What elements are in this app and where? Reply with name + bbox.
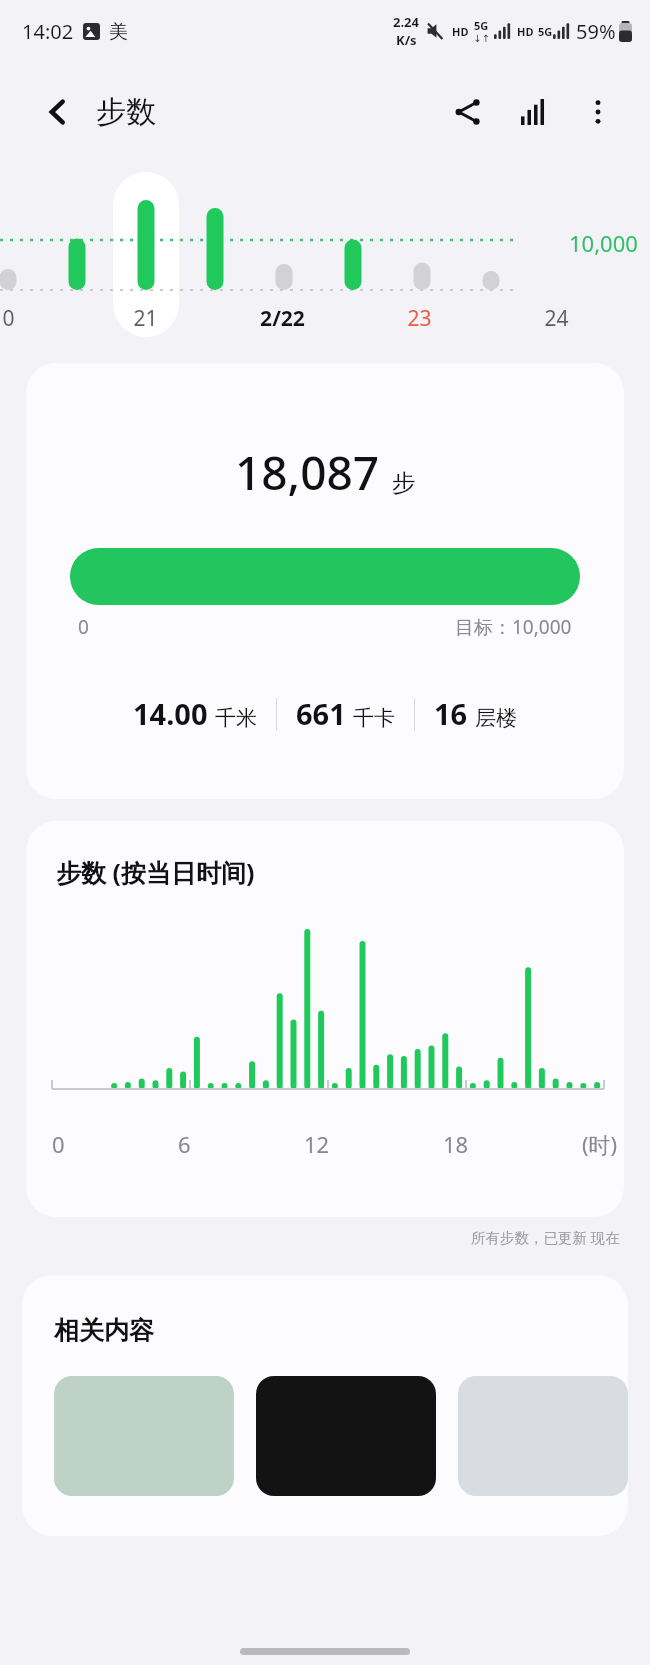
button[interactable]: 0 [0, 304, 42, 333]
button[interactable]: More options [572, 86, 624, 138]
staticText: 层楼 [475, 705, 517, 731]
button[interactable] [256, 1376, 436, 1496]
staticText: 所有步数，已更新 现在 [471, 1227, 620, 1247]
button[interactable] [54, 1376, 234, 1496]
staticText: 59% [576, 18, 616, 45]
staticText: HD [517, 24, 534, 39]
button[interactable] [458, 1376, 628, 1496]
staticText: 6 [178, 1129, 191, 1159]
staticText: 千米 [215, 705, 257, 731]
button[interactable]: 2/22 [248, 304, 316, 333]
staticText: 0 [2, 304, 15, 333]
staticText: 18,087 [235, 441, 380, 504]
staticText: ↓↑ [473, 33, 490, 45]
button[interactable]: 相关内容 [22, 1275, 628, 1536]
staticText: 步数 (按当日时间) [56, 855, 255, 889]
staticText: 步 [392, 468, 416, 498]
button[interactable]: 24 [522, 304, 590, 333]
button[interactable]: 23 [385, 304, 453, 333]
staticText: 23 [407, 304, 432, 333]
staticText: 2/22 [260, 304, 305, 333]
staticText: K/s [396, 31, 417, 49]
staticText: 5G [538, 24, 553, 39]
staticText: 24 [544, 304, 569, 333]
staticText: (时) [582, 1129, 618, 1159]
button[interactable]: Share [442, 86, 494, 138]
staticText: 5G [474, 18, 489, 33]
staticText: 0 [52, 1129, 65, 1159]
button[interactable]: Back [34, 88, 82, 136]
staticText: 步数 [96, 93, 156, 131]
staticText: 2.24 [393, 13, 419, 31]
staticText: 16 [434, 694, 468, 733]
staticText: 相关内容 [54, 1315, 154, 1346]
button[interactable]: 18,087 [26, 363, 624, 799]
staticText: 18 [443, 1129, 469, 1159]
staticText: 661 [296, 694, 346, 733]
staticText: 14:02 [22, 18, 74, 45]
staticText: 千卡 [353, 705, 395, 731]
staticText: 0 [78, 614, 89, 640]
button[interactable]: 步数 (按当日时间) [26, 821, 624, 1217]
staticText: 10,000 [569, 228, 638, 258]
button[interactable]: Chart [508, 86, 560, 138]
staticText: 21 [133, 304, 158, 333]
button[interactable]: 21 [111, 304, 179, 333]
staticText: 14.00 [133, 694, 208, 733]
staticText: HD [452, 24, 469, 39]
staticText: 美 [109, 20, 128, 44]
staticText: 目标：10,000 [455, 614, 572, 640]
staticText: 12 [304, 1129, 330, 1159]
